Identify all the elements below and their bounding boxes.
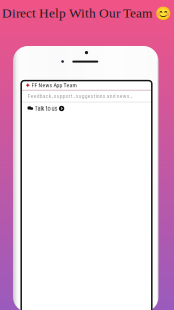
staticText: Talk to us (34, 105, 57, 112)
staticText: FF News App Team (32, 82, 77, 88)
button[interactable]: Talk to us (21, 102, 152, 114)
staticText: Feedback, support , suggestions and news… (28, 93, 133, 99)
staticText: Direct Help With Our Team 😊 (2, 5, 172, 21)
